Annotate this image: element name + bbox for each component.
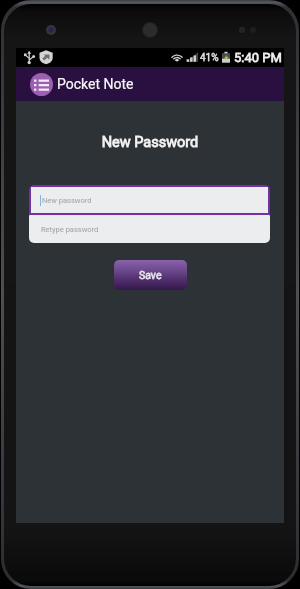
staticText: Pocket Note — [57, 76, 134, 92]
staticText: 41% — [200, 52, 219, 64]
staticText: New Password — [16, 134, 284, 151]
staticText: Save — [139, 269, 162, 281]
button[interactable]: Retype password — [29, 215, 270, 243]
button[interactable]: Save — [114, 260, 187, 290]
button[interactable]: New password — [31, 187, 268, 213]
staticText: New password — [42, 196, 92, 205]
button[interactable]: Open navigation menu — [30, 73, 53, 96]
staticText: 5:40 PM — [234, 50, 282, 65]
staticText: Retype password — [41, 225, 99, 234]
